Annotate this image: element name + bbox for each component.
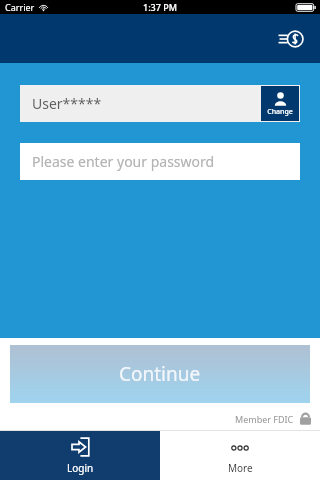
button[interactable]: Continue — [10, 345, 310, 403]
button[interactable]: Login — [0, 431, 160, 480]
staticText: Login — [67, 461, 94, 475]
staticText: 1:37 PM — [143, 1, 177, 13]
staticText: Continue — [119, 361, 201, 387]
staticText: User***** — [32, 94, 260, 113]
button[interactable]: Quick balance — [274, 22, 308, 56]
button[interactable]: Change user — [261, 86, 299, 121]
staticText: Change — [267, 107, 293, 117]
staticText: Member FDIC — [235, 413, 294, 425]
button[interactable]: Please enter your password — [20, 143, 300, 180]
staticText: Please enter your password — [32, 152, 215, 171]
staticText: More — [228, 461, 253, 475]
staticText: Carrier — [5, 1, 35, 13]
button[interactable]: More — [160, 431, 320, 480]
button[interactable]: User***** — [20, 85, 300, 122]
